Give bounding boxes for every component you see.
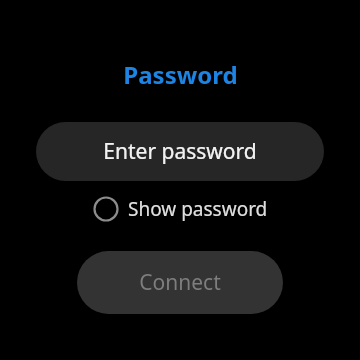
staticText: Connect [139,268,221,297]
staticText: Show password [128,196,268,222]
button[interactable]: Enter password [36,122,324,181]
button[interactable]: Connect [77,251,283,314]
other: Show password toggle [93,196,119,222]
staticText: Enter password [103,137,257,166]
button[interactable]: Show password toggle [85,190,276,228]
staticText: Password [123,58,238,91]
